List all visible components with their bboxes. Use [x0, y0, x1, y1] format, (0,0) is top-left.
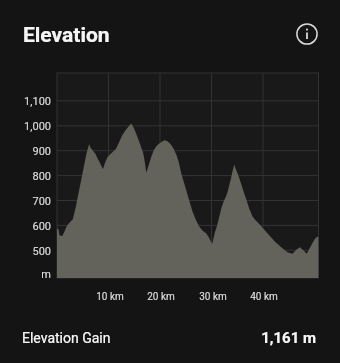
staticText: 700 [11, 195, 51, 363]
staticText: Elevation [23, 23, 110, 48]
staticText: 1,100 [11, 95, 51, 363]
staticText: 10 km [85, 291, 135, 363]
staticText: 20 km [136, 291, 186, 363]
staticText: 1,000 [11, 120, 51, 363]
staticText: 900 [11, 145, 51, 363]
staticText: m [11, 268, 51, 363]
staticText: 800 [11, 170, 51, 363]
button[interactable]: Info [293, 20, 320, 47]
staticText: Elevation Gain [22, 330, 111, 346]
staticText: 600 [11, 220, 51, 363]
staticText: 30 km [188, 291, 238, 363]
staticText: 500 [11, 245, 51, 363]
staticText: 1,161 m [216, 329, 316, 363]
staticText: 40 km [239, 291, 289, 363]
